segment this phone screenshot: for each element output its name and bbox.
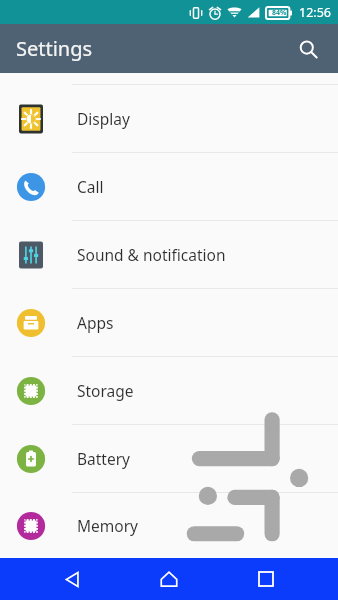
staticText: Apps <box>77 312 114 333</box>
button[interactable]: Sound & notification <box>0 221 338 288</box>
button[interactable]: Battery <box>0 425 338 492</box>
button[interactable]: Memory <box>0 493 338 558</box>
staticText: Display <box>77 108 130 129</box>
button[interactable]: Search <box>286 27 330 71</box>
button[interactable]: Display <box>0 85 338 152</box>
staticText: Battery <box>77 448 131 469</box>
button[interactable]: Call <box>0 153 338 220</box>
staticText: Call <box>77 176 104 197</box>
button[interactable]: Home <box>144 558 194 600</box>
button[interactable]: Back <box>47 558 97 600</box>
button[interactable]: Storage <box>0 357 338 424</box>
staticText: 12:56 <box>299 4 331 21</box>
staticText: Settings <box>16 35 93 62</box>
button[interactable]: Apps <box>0 289 338 356</box>
staticText: Sound & notification <box>77 244 226 265</box>
staticText: Memory <box>77 515 138 536</box>
button[interactable]: Recent apps <box>241 558 291 600</box>
staticText: 84% <box>272 8 287 18</box>
staticText: Storage <box>77 380 134 401</box>
